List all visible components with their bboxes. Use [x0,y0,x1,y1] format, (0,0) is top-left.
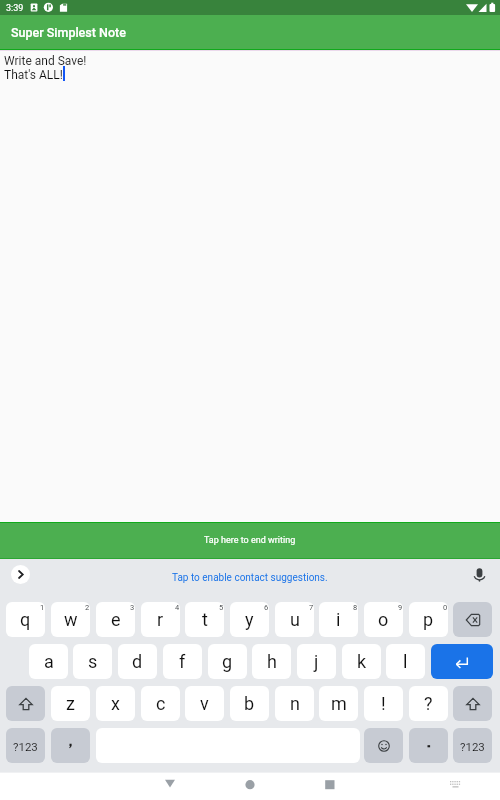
button[interactable]: r [141,602,180,637]
staticText: z [66,693,75,714]
staticText: 7 [309,603,314,612]
button[interactable]: Super Simplest Note [0,15,500,49]
button[interactable]: e [96,602,135,637]
button[interactable]: Tap to enable contact suggestions. [0,559,500,597]
staticText: That's ALL! [4,68,63,82]
staticText: e [111,609,121,630]
button[interactable]: i [319,602,358,637]
staticText: l [403,651,408,672]
staticText: ! [381,693,386,714]
staticText: 4 [175,603,180,612]
staticText: q [20,609,31,630]
staticText: d [132,651,143,672]
staticText: v [200,693,209,714]
button[interactable]: Home [235,772,265,800]
staticText: t [202,609,208,630]
button[interactable]: Back [155,772,185,800]
staticText: Super Simplest Note [11,25,126,40]
button[interactable]: o [364,602,403,637]
button[interactable]: Shift [453,686,492,721]
staticText: w [64,609,78,630]
staticText: 3 [130,603,135,612]
button[interactable]: ?123 [6,728,45,763]
button[interactable]: Shift [6,686,45,721]
button[interactable]: ?123 [453,728,492,763]
staticText: h [267,651,277,672]
staticText: 1 [40,603,45,612]
button[interactable]: Emoji [364,728,403,763]
staticText: 9 [398,603,403,612]
button[interactable]: f [163,644,202,679]
staticText: 6 [264,603,269,612]
staticText: p [423,609,434,630]
button[interactable]: h [252,644,291,679]
button[interactable]: d [118,644,157,679]
staticText: i [336,609,341,630]
button[interactable]: y [230,602,269,637]
button[interactable]: Enter [431,644,493,679]
button[interactable]: s [73,644,112,679]
button[interactable]: n [275,686,314,721]
button[interactable]: m [319,686,358,721]
staticText: ?123 [460,740,485,753]
staticText: 2 [85,603,90,612]
staticText: g [222,651,233,672]
staticText: ?123 [13,740,38,753]
staticText: 0 [443,603,448,612]
button[interactable]: Recents [315,772,345,800]
button[interactable]: q [6,602,45,637]
button[interactable]: Tap here to end writing [0,522,500,559]
staticText: c [156,693,166,714]
button[interactable] [409,728,448,763]
button[interactable]: z [51,686,90,721]
button[interactable]: k [342,644,381,679]
button[interactable]: g [208,644,247,679]
button[interactable]: p [409,602,448,637]
button[interactable]: Backspace [453,602,492,637]
staticText: j [314,651,319,672]
button[interactable]: u [275,602,314,637]
staticText: o [378,609,389,630]
button[interactable]: j [297,644,336,679]
staticText: Tap to enable contact suggestions. [172,572,328,584]
staticText: x [111,693,120,714]
staticText: b [244,693,255,714]
button[interactable] [51,728,90,763]
button[interactable]: v [185,686,224,721]
staticText: m [331,693,347,714]
staticText: f [179,651,186,672]
staticText: ? [424,693,433,714]
staticText: 5 [219,603,224,612]
staticText: r [157,609,164,630]
button[interactable]: Expand suggestions [11,565,30,584]
staticText: Write and Save! [4,54,87,68]
button[interactable]: t [185,602,224,637]
button[interactable]: ? [409,686,448,721]
staticText: u [290,609,300,630]
button[interactable]: x [96,686,135,721]
button[interactable]: w [51,602,90,637]
staticText: y [245,609,254,630]
button[interactable]: Voice input [470,566,489,585]
staticText: 8 [353,603,358,612]
button[interactable]: c [141,686,180,721]
staticText: n [290,693,300,714]
button[interactable]: ! [364,686,403,721]
button[interactable]: b [230,686,269,721]
staticText: s [88,651,98,672]
button[interactable]: a [29,644,68,679]
staticText: 3:39 [6,3,24,14]
button[interactable]: Write and Save! [0,51,500,522]
staticText: Tap here to end writing [204,535,296,546]
button[interactable]: l [386,644,425,679]
staticText: k [357,651,367,672]
button[interactable]: Switch keyboard [440,772,470,800]
staticText: a [44,651,54,672]
